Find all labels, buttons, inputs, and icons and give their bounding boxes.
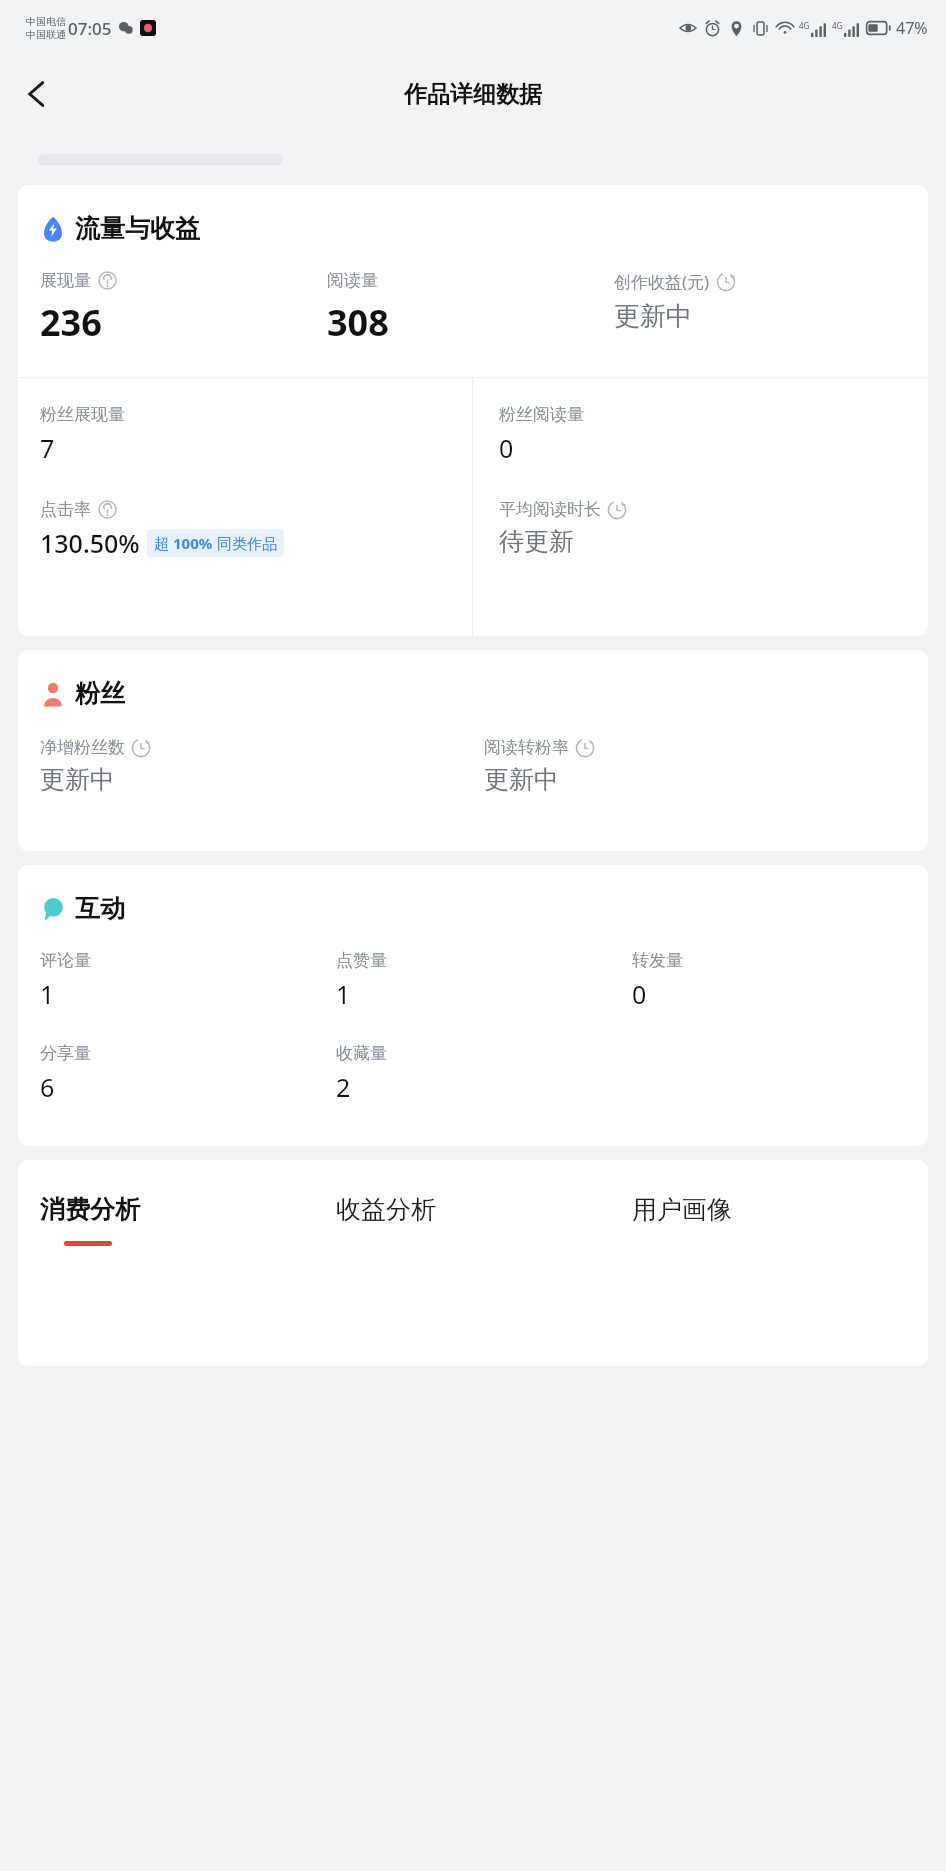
staticText: 07:05: [68, 17, 112, 40]
staticText: 阅读转粉率: [484, 737, 569, 758]
staticText: 100%: [173, 533, 213, 553]
staticText: 7: [40, 431, 55, 465]
staticText: 粉丝展现量: [40, 404, 125, 425]
staticText: 粉丝: [75, 678, 125, 709]
staticText: 2: [336, 1070, 351, 1104]
staticText: 更新中: [484, 764, 559, 795]
button[interactable]: Back: [10, 67, 64, 121]
staticText: 更新中: [614, 300, 692, 333]
staticText: 流量与收益: [75, 213, 200, 244]
staticText: 4G: [799, 20, 810, 31]
staticText: 收藏量: [336, 1043, 387, 1064]
staticText: 0: [499, 431, 514, 465]
staticText: 评论量: [40, 950, 91, 971]
staticText: 分享量: [40, 1043, 91, 1064]
staticText: 1: [336, 977, 351, 1011]
staticText: 同类作品: [213, 533, 277, 553]
staticText: 中国电信: [26, 15, 66, 28]
staticText: 转发量: [632, 950, 683, 971]
staticText: 展现量: [40, 270, 91, 291]
button[interactable]: 用户画像: [632, 1194, 928, 1241]
staticText: 中国联通: [26, 28, 66, 41]
staticText: 阅读量: [327, 270, 378, 291]
staticText: 130.50%: [40, 526, 140, 560]
staticText: 创作收益(元): [614, 270, 710, 293]
staticText: 用户画像: [632, 1194, 732, 1225]
button[interactable]: 收益分析: [336, 1194, 632, 1241]
staticText: 0: [632, 977, 647, 1011]
staticText: 粉丝阅读量: [499, 404, 584, 425]
staticText: 作品详细数据: [404, 80, 542, 109]
staticText: 4G: [832, 20, 843, 31]
staticText: 更新中: [40, 764, 115, 795]
staticText: 6: [40, 1070, 55, 1104]
staticText: 平均阅读时长: [499, 499, 601, 520]
staticText: 净增粉丝数: [40, 737, 125, 758]
staticText: 超: [154, 533, 173, 553]
staticText: 互动: [75, 893, 125, 924]
button[interactable]: 消费分析: [40, 1194, 336, 1246]
staticText: 待更新: [499, 526, 574, 557]
staticText: 308: [327, 298, 389, 347]
staticText: 点击率: [40, 499, 91, 520]
staticText: 收益分析: [336, 1194, 436, 1225]
staticText: 47%: [896, 17, 928, 39]
staticText: 236: [40, 298, 102, 347]
staticText: 点赞量: [336, 950, 387, 971]
staticText: 1: [40, 977, 55, 1011]
staticText: 消费分析: [40, 1194, 140, 1225]
